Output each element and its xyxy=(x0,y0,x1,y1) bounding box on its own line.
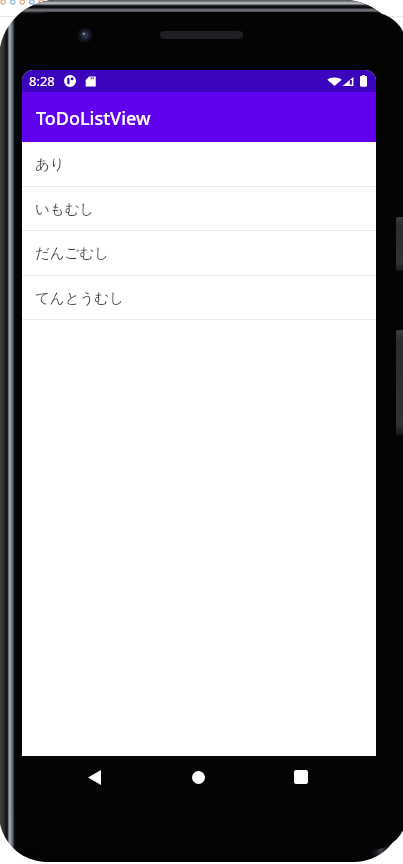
button[interactable]: ToDoListView xyxy=(22,92,376,142)
button[interactable]: てんとうむし xyxy=(22,276,376,319)
staticText: てんとうむし xyxy=(35,289,125,307)
staticText: 8:28 xyxy=(29,72,55,90)
button[interactable]: あり xyxy=(22,142,376,186)
staticText: ToDoListView xyxy=(36,106,151,131)
button[interactable]: Back xyxy=(74,757,114,797)
button[interactable]: Recent apps xyxy=(281,757,321,797)
staticText: いもむし xyxy=(35,200,95,218)
staticText: だんごむし xyxy=(35,244,110,262)
button[interactable]: いもむし xyxy=(22,187,376,230)
staticText: あり xyxy=(35,155,65,173)
button[interactable]: だんごむし xyxy=(22,231,376,275)
button[interactable]: Home xyxy=(178,757,218,797)
